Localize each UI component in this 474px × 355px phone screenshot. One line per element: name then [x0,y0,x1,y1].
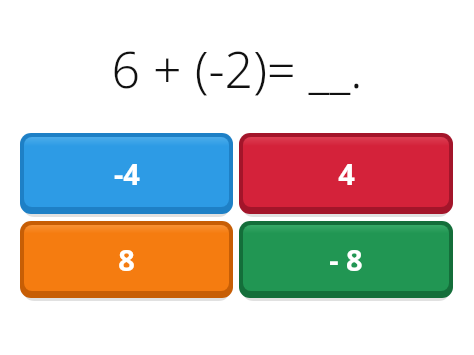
button[interactable]: - 8 [239,221,453,298]
staticText: 8 [118,240,135,279]
button[interactable]: -4 [20,133,233,214]
staticText: - 8 [329,240,363,279]
button[interactable]: 8 [20,221,233,298]
button[interactable]: 4 [239,133,453,214]
staticText: -4 [114,154,140,193]
staticText: 4 [338,154,355,193]
staticText: 6 + (-2)= __. [0,35,474,103]
